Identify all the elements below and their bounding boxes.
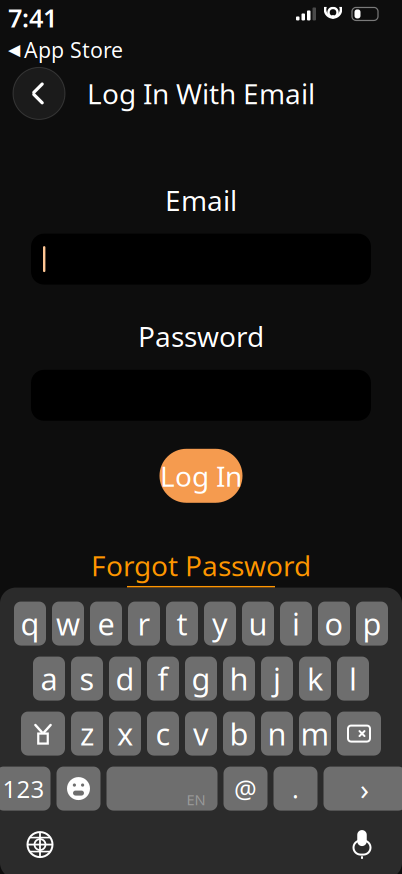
- button[interactable]: @: [223, 767, 267, 811]
- button[interactable]: o: [318, 602, 350, 646]
- button[interactable]: t: [166, 602, 198, 646]
- staticText: r: [137, 603, 150, 644]
- button[interactable]: v: [185, 712, 217, 756]
- staticText: m: [300, 713, 329, 754]
- staticText: l: [349, 658, 357, 699]
- staticText: e: [97, 603, 114, 644]
- button[interactable]: Shift: [21, 712, 65, 756]
- staticText: k: [307, 658, 323, 699]
- staticText: i: [292, 603, 300, 644]
- staticText: Forgot Password: [91, 547, 311, 584]
- button[interactable]: Log In: [159, 449, 242, 503]
- button[interactable]: n: [261, 712, 293, 756]
- staticText: v: [193, 713, 209, 754]
- staticText: App Store: [24, 36, 123, 64]
- button[interactable]: .: [273, 767, 317, 811]
- staticText: s: [79, 658, 94, 699]
- button[interactable]: Return: [323, 767, 402, 811]
- staticText: q: [20, 603, 39, 644]
- button[interactable]: z: [71, 712, 103, 756]
- button[interactable]: w: [52, 602, 84, 646]
- button[interactable]: Space: [106, 767, 217, 811]
- staticText: @: [234, 772, 257, 805]
- staticText: 7:41: [8, 1, 57, 34]
- staticText: d: [115, 658, 134, 699]
- button[interactable]: c: [147, 712, 179, 756]
- staticText: j: [273, 658, 281, 699]
- button[interactable]: Forgot Password: [91, 547, 311, 588]
- staticText: Log In With Email: [87, 75, 315, 112]
- staticText: Email: [165, 181, 237, 219]
- staticText: ›: [360, 769, 369, 808]
- button[interactable]: Delete: [337, 712, 381, 756]
- staticText: n: [267, 713, 286, 754]
- staticText: h: [229, 658, 248, 699]
- button[interactable]: g: [185, 657, 217, 701]
- button[interactable]: a: [33, 657, 65, 701]
- staticText: z: [80, 713, 94, 754]
- button[interactable]: l: [337, 657, 369, 701]
- button[interactable]: m: [299, 712, 331, 756]
- staticText: g: [191, 658, 210, 699]
- button[interactable]: p: [356, 602, 388, 646]
- button[interactable]: Back to App Store: [8, 36, 123, 64]
- staticText: t: [176, 603, 187, 644]
- staticText: u: [248, 603, 267, 644]
- staticText: y: [212, 603, 228, 644]
- staticText: ◀: [8, 41, 20, 59]
- staticText: a: [40, 658, 57, 699]
- button[interactable]: Dictation: [340, 823, 384, 867]
- staticText: w: [56, 603, 80, 644]
- button[interactable]: Back: [13, 67, 65, 119]
- button[interactable]: s: [71, 657, 103, 701]
- button[interactable]: k: [299, 657, 331, 701]
- staticText: b: [229, 713, 248, 754]
- button[interactable]: r: [128, 602, 160, 646]
- button[interactable]: h: [223, 657, 255, 701]
- button[interactable]: i: [280, 602, 312, 646]
- staticText: 123: [2, 773, 44, 804]
- button[interactable]: j: [261, 657, 293, 701]
- button[interactable]: y: [204, 602, 236, 646]
- button[interactable]: Emoji: [56, 767, 100, 811]
- staticText: .: [292, 772, 299, 805]
- button[interactable]: x: [109, 712, 141, 756]
- button[interactable]: q: [14, 602, 46, 646]
- staticText: x: [117, 713, 133, 754]
- staticText: o: [324, 603, 343, 644]
- button[interactable]: b: [223, 712, 255, 756]
- button[interactable]: f: [147, 657, 179, 701]
- staticText: p: [362, 603, 381, 644]
- staticText: EN: [186, 790, 205, 809]
- staticText: c: [155, 713, 170, 754]
- staticText: Log In: [160, 457, 242, 494]
- button[interactable]: d: [109, 657, 141, 701]
- staticText: Password: [138, 318, 264, 355]
- button[interactable]: Change keyboard: [18, 823, 62, 867]
- button[interactable]: e: [90, 602, 122, 646]
- staticText: f: [157, 658, 168, 699]
- button[interactable]: u: [242, 602, 274, 646]
- button[interactable]: 123: [0, 767, 50, 811]
